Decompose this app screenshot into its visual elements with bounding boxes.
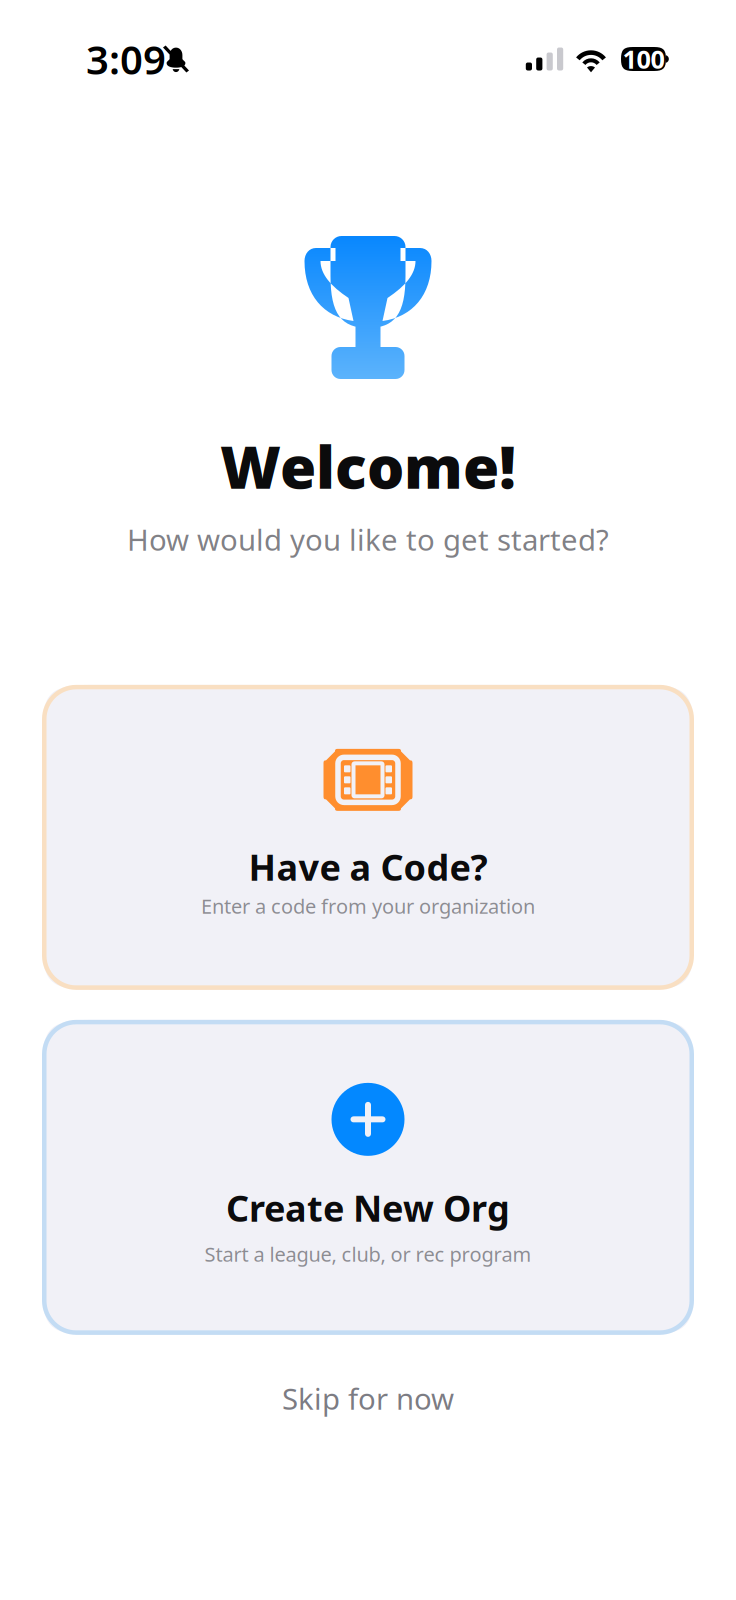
staticText: Welcome! — [220, 427, 516, 505]
staticText: Enter a code from your organization — [201, 893, 535, 919]
staticText: How would you like to get started? — [127, 520, 609, 559]
button[interactable]: Create New Org — [42, 1020, 694, 1335]
staticText: Create New Org — [226, 1184, 510, 1232]
staticText: Skip for now — [282, 1379, 454, 1418]
button[interactable]: Skip for now — [262, 1369, 474, 1428]
staticText: Have a Code? — [248, 843, 487, 891]
staticText: 3:09 — [86, 32, 166, 85]
staticText: Start a league, club, or rec program — [204, 1241, 531, 1267]
staticText: 100 — [622, 42, 664, 76]
button[interactable]: Have a Code? — [42, 685, 694, 990]
